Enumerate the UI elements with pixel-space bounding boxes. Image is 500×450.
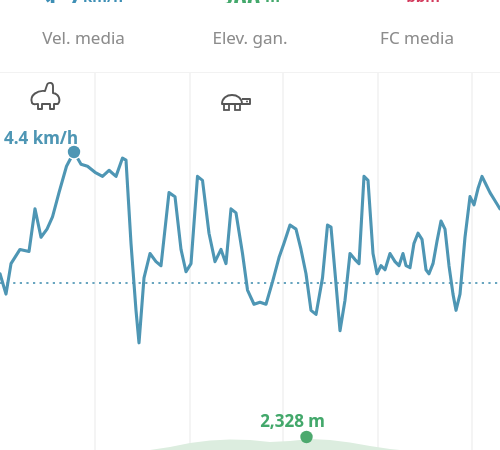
staticText: Elev. gan. (212, 26, 288, 49)
staticText: 4.4 km/h (4, 126, 78, 149)
button[interactable]: Slowest speed (218, 84, 254, 120)
staticText: Vel. media (42, 26, 125, 49)
staticText: 1.7 (44, 0, 79, 3)
staticText: 2,328 m (260, 409, 325, 432)
button[interactable]: 1.7 (0, 0, 166, 49)
button[interactable]: - (333, 0, 500, 49)
button[interactable]: Fastest speed (28, 84, 64, 120)
button[interactable]: 4.4 km/h (2, 126, 80, 149)
button[interactable]: 300 (166, 0, 333, 49)
staticText: FC media (380, 26, 454, 49)
staticText: m (265, 0, 280, 2)
staticText: 300 (219, 0, 261, 3)
staticText: km/h (83, 0, 123, 2)
staticText: ppm (406, 0, 440, 2)
button[interactable]: 2,328 m (258, 409, 327, 432)
